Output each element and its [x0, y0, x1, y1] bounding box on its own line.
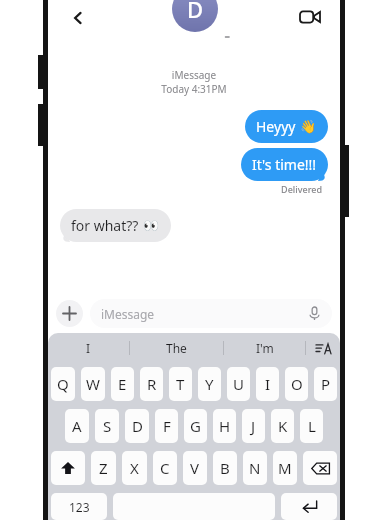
button[interactable]: Back — [58, 0, 98, 30]
staticText: Today 4:31PM — [60, 82, 328, 96]
staticText: L — [308, 416, 316, 436]
staticText: B — [220, 458, 230, 478]
button[interactable]: A — [65, 409, 89, 443]
staticText: D — [187, 0, 204, 24]
button[interactable]: The — [130, 333, 223, 363]
staticText: 👀 — [143, 218, 160, 233]
button[interactable]: iMessage — [90, 299, 332, 328]
staticText: I'm — [256, 340, 274, 356]
staticText: D — [132, 416, 143, 436]
button[interactable]: N — [243, 451, 267, 485]
staticText: T — [176, 374, 185, 394]
staticText: 👋 — [300, 119, 317, 134]
staticText: N — [249, 458, 261, 478]
button[interactable]: F — [155, 409, 178, 443]
staticText: iMessage — [101, 306, 308, 322]
button[interactable]: H — [213, 409, 236, 443]
button[interactable]: Backspace — [303, 451, 337, 485]
button[interactable]: Y — [198, 367, 221, 401]
button[interactable]: P — [314, 367, 337, 401]
staticText: Z — [99, 458, 108, 478]
staticText: S — [103, 416, 112, 436]
button[interactable]: It's time!!! — [241, 148, 328, 181]
button[interactable]: Shift — [51, 451, 85, 485]
staticText: E — [118, 374, 127, 394]
button[interactable]: 123 — [51, 493, 107, 520]
staticText: V — [190, 458, 200, 478]
staticText: I — [86, 340, 91, 356]
staticText: Q — [57, 374, 69, 394]
button[interactable]: T — [169, 367, 192, 401]
button[interactable]: B — [213, 451, 237, 485]
button[interactable]: J — [242, 409, 265, 443]
button[interactable]: R — [140, 367, 163, 401]
button[interactable]: Heyyy — [245, 110, 328, 143]
button[interactable]: W — [81, 367, 105, 401]
button[interactable]: I — [256, 367, 279, 401]
staticText: G — [190, 416, 201, 436]
button[interactable]: X — [122, 451, 147, 485]
staticText: P — [321, 374, 331, 394]
button[interactable]: O — [285, 367, 308, 401]
button[interactable]: L — [300, 409, 323, 443]
button[interactable]: M — [273, 451, 297, 485]
staticText: iMessage — [60, 68, 328, 82]
button[interactable]: D — [125, 409, 149, 443]
staticText: O — [291, 374, 303, 394]
button[interactable]: I — [48, 333, 129, 363]
staticText: H — [219, 416, 231, 436]
button[interactable]: V — [183, 451, 207, 485]
staticText: The — [166, 340, 187, 356]
staticText: U — [233, 374, 244, 394]
staticText: Y — [205, 374, 214, 394]
button[interactable]: E — [111, 367, 134, 401]
button[interactable]: U — [227, 367, 250, 401]
staticText: Heyyy — [256, 117, 296, 136]
staticText: I — [265, 374, 271, 394]
staticText: R — [147, 374, 157, 394]
staticText: 123 — [69, 499, 90, 515]
button[interactable]: Q — [51, 367, 75, 401]
button[interactable]: D — [148, 0, 241, 38]
staticText: It's time!!! — [252, 155, 317, 174]
button[interactable]: Text formatting — [306, 333, 340, 363]
button[interactable]: G — [184, 409, 207, 443]
staticText: M — [278, 458, 292, 478]
button[interactable]: K — [271, 409, 294, 443]
button[interactable]: S — [95, 409, 119, 443]
staticText: A — [72, 416, 82, 436]
button[interactable]: FaceTime video call — [290, 0, 330, 30]
button[interactable]: C — [153, 451, 177, 485]
button[interactable]: Add attachment — [56, 300, 83, 327]
staticText: C — [160, 458, 170, 478]
staticText: J — [251, 416, 256, 436]
staticText: for what?? — [71, 216, 139, 235]
staticText: F — [163, 416, 171, 436]
staticText: W — [86, 374, 100, 394]
button[interactable]: return — [281, 493, 337, 520]
button[interactable]: I'm — [224, 333, 305, 363]
staticText: K — [278, 416, 288, 436]
staticText: X — [130, 458, 139, 478]
staticText: Delivered — [60, 183, 322, 195]
button[interactable]: Z — [91, 451, 116, 485]
button[interactable]: for what?? — [60, 209, 171, 242]
